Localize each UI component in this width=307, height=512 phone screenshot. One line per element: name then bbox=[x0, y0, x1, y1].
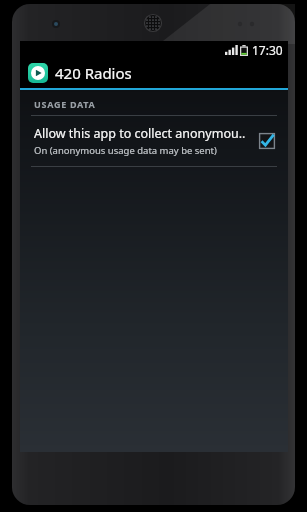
button[interactable]: Allow this app to collect anonymou.. bbox=[20, 116, 288, 166]
other: 420 Radios app icon bbox=[28, 63, 48, 83]
staticText: On (anonymous usage data may be sent) bbox=[34, 144, 217, 157]
staticText: 17:30 bbox=[252, 42, 283, 58]
staticText: Allow this app to collect anonymou.. bbox=[34, 125, 246, 142]
button[interactable]: Allow anonymous usage data collection to… bbox=[256, 130, 278, 152]
staticText: 420 Radios bbox=[55, 63, 132, 83]
button[interactable]: 420 Radios app icon bbox=[20, 58, 288, 88]
staticText: USAGE DATA bbox=[34, 98, 96, 110]
